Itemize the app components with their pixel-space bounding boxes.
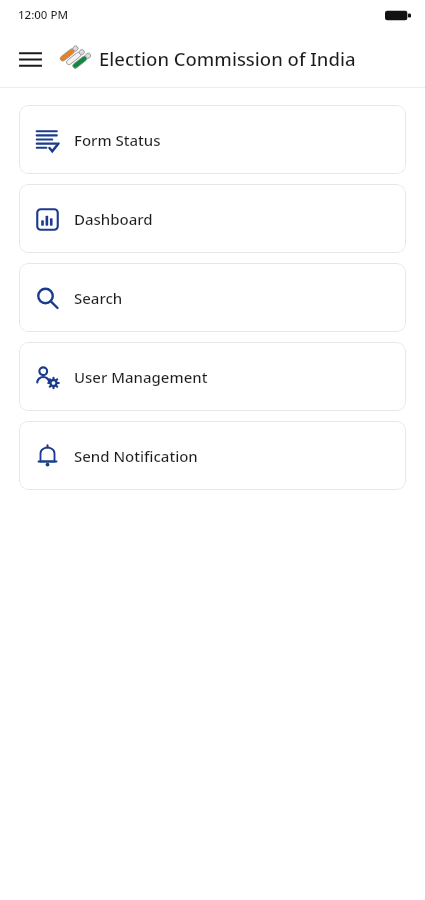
button[interactable]: Open navigation menu [10,39,50,79]
staticText: User Management [74,367,208,387]
button[interactable]: Send Notification [19,421,406,490]
button[interactable]: Form Status [19,105,406,174]
button[interactable]: Dashboard [19,184,406,253]
staticText: Send Notification [74,446,198,466]
staticText: Election Commission of India [99,46,356,71]
staticText: Dashboard [74,209,153,229]
button[interactable]: Search [19,263,406,332]
button[interactable]: User Management [19,342,406,411]
staticText: 12:00 PM [18,7,69,23]
staticText: Search [74,288,123,308]
staticText: Form Status [74,130,161,150]
